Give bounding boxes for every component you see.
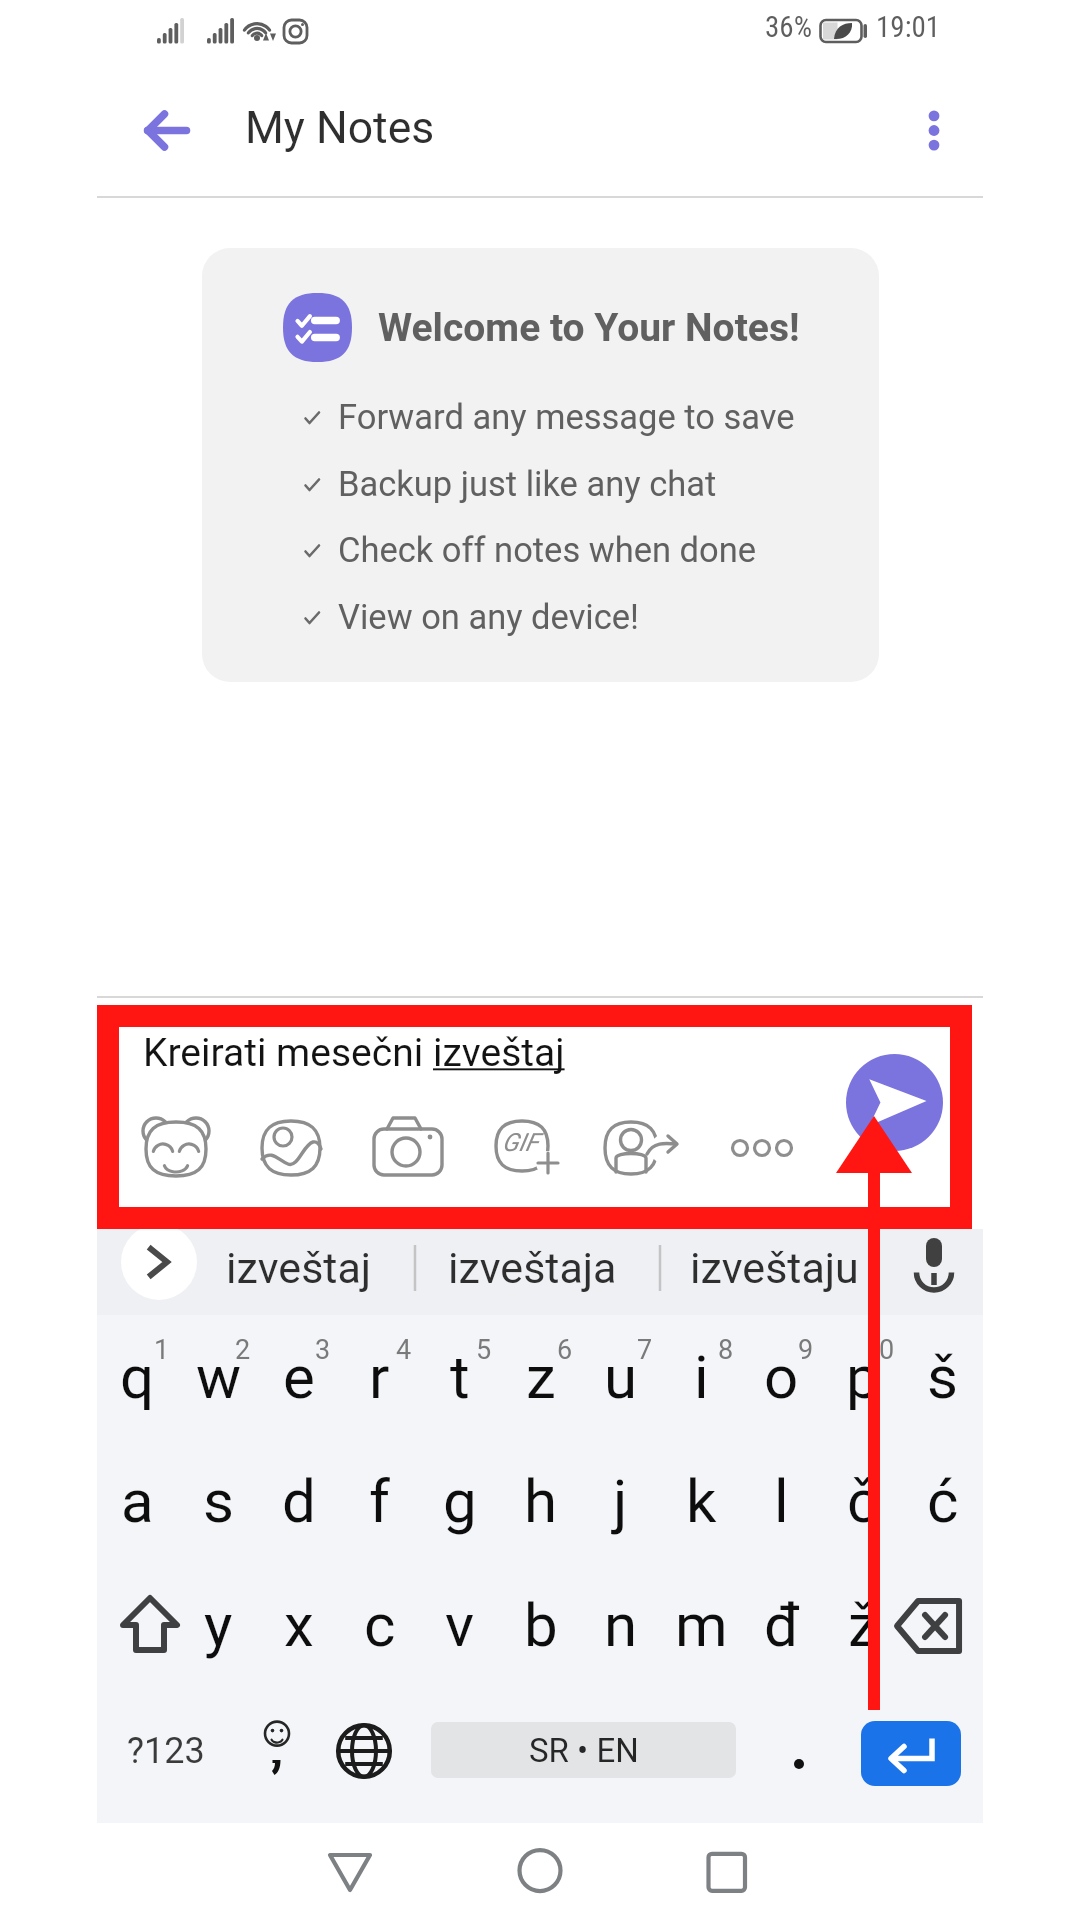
staticText: r	[369, 1342, 390, 1412]
button[interactable]: Contact	[595, 1100, 691, 1196]
button[interactable]: More options	[887, 86, 982, 181]
button[interactable]: Period	[752, 1711, 848, 1809]
staticText: h	[524, 1466, 558, 1536]
staticText: 3	[315, 1334, 331, 1366]
button[interactable]: o	[741, 1317, 822, 1437]
staticText: Welcome to Your Notes!	[378, 305, 800, 351]
button[interactable]: Voice input	[902, 1229, 966, 1315]
staticText: j	[613, 1466, 628, 1536]
button[interactable]: Back	[119, 86, 214, 181]
button[interactable]: SR • EN	[431, 1722, 736, 1778]
staticText: đ	[764, 1590, 800, 1660]
staticText: n	[604, 1590, 638, 1660]
button[interactable]: k	[661, 1441, 742, 1561]
staticText: a	[121, 1466, 154, 1536]
button[interactable]: Change language	[315, 1711, 413, 1809]
button[interactable]: More	[714, 1100, 810, 1196]
staticText: k	[686, 1466, 717, 1536]
staticText: y	[204, 1590, 233, 1660]
staticText: q	[120, 1342, 155, 1412]
button[interactable]: f	[339, 1441, 420, 1561]
button[interactable]: Backspace	[902, 1565, 983, 1685]
button[interactable]: q	[97, 1317, 178, 1437]
staticText: l	[774, 1466, 789, 1536]
staticText: c	[364, 1590, 396, 1660]
button[interactable]: Stickers	[128, 1100, 224, 1196]
button[interactable]: v	[419, 1565, 500, 1685]
button[interactable]: e	[258, 1317, 339, 1437]
staticText: 1	[154, 1334, 170, 1366]
button[interactable]: g	[419, 1441, 500, 1561]
button[interactable]: Home	[479, 1823, 599, 1920]
button[interactable]: đ	[741, 1565, 822, 1685]
button[interactable]: x	[258, 1565, 339, 1685]
button[interactable]: s	[178, 1441, 259, 1561]
staticText: i	[694, 1342, 709, 1412]
button[interactable]: ć	[902, 1441, 983, 1561]
staticText: ž	[848, 1590, 878, 1660]
staticText: 4	[396, 1334, 412, 1366]
staticText: My Notes	[245, 102, 435, 154]
staticText: 7	[637, 1334, 653, 1366]
button[interactable]: r	[339, 1317, 420, 1437]
button[interactable]: h	[500, 1441, 581, 1561]
button[interactable]: j	[580, 1441, 661, 1561]
staticText: 36%	[765, 10, 812, 44]
button[interactable]: More suggestions	[121, 1224, 197, 1300]
staticText: ć	[927, 1466, 959, 1536]
button[interactable]: i	[661, 1317, 742, 1437]
button[interactable]: n	[580, 1565, 661, 1685]
staticText: e	[283, 1342, 315, 1412]
staticText: GIF	[502, 1128, 539, 1157]
staticText: f	[369, 1466, 390, 1536]
staticText: u	[604, 1342, 638, 1412]
button[interactable]: l	[741, 1441, 822, 1561]
button[interactable]: izveštaju	[690, 1239, 859, 1297]
button[interactable]: Gallery	[243, 1100, 339, 1196]
button[interactable]: izveštaja	[448, 1239, 617, 1297]
button[interactable]: y	[178, 1565, 259, 1685]
staticText: v	[445, 1590, 475, 1660]
button[interactable]: Enter	[861, 1721, 961, 1786]
staticText: Forward any message to save	[338, 397, 795, 437]
button[interactable]: Send	[846, 1054, 943, 1151]
staticText: z	[526, 1342, 556, 1412]
staticText: izveštaj	[433, 1030, 565, 1076]
button[interactable]: š	[902, 1317, 983, 1437]
button[interactable]: č	[822, 1441, 903, 1561]
button[interactable]: ž	[822, 1565, 903, 1685]
staticText: 9	[798, 1334, 814, 1366]
button[interactable]: GIF	[479, 1100, 575, 1196]
staticText: o	[764, 1342, 799, 1412]
staticText: View on any device!	[338, 597, 639, 637]
staticText: 5	[476, 1334, 492, 1366]
button[interactable]: c	[339, 1565, 420, 1685]
button[interactable]: Back	[288, 1823, 408, 1920]
staticText: SR • EN	[529, 1731, 639, 1770]
button[interactable]: Emoji and comma	[237, 1711, 333, 1809]
button[interactable]: Recent apps	[667, 1823, 787, 1920]
button[interactable]: u	[580, 1317, 661, 1437]
staticText: Kreirati mesečni	[143, 1030, 433, 1076]
button[interactable]: t	[419, 1317, 500, 1437]
button[interactable]: p	[822, 1317, 903, 1437]
button[interactable]: izveštaj	[226, 1239, 372, 1297]
staticText: m	[675, 1590, 728, 1660]
button[interactable]: z	[500, 1317, 581, 1437]
button[interactable]: Shift	[97, 1565, 178, 1685]
button[interactable]: a	[97, 1441, 178, 1561]
staticText: 19:01	[876, 10, 941, 44]
staticText: d	[282, 1466, 316, 1536]
staticText: g	[443, 1466, 477, 1536]
staticText: izveštaj	[226, 1243, 372, 1293]
staticText: b	[524, 1590, 558, 1660]
button[interactable]: m	[661, 1565, 742, 1685]
button[interactable]: b	[500, 1565, 581, 1685]
staticText: s	[203, 1466, 234, 1536]
staticText: t	[450, 1342, 470, 1412]
button[interactable]: w	[178, 1317, 259, 1437]
button[interactable]: d	[258, 1441, 339, 1561]
staticText: izveštaju	[690, 1243, 859, 1293]
button[interactable]: Camera	[360, 1100, 456, 1196]
button[interactable]: ?123	[106, 1702, 226, 1800]
